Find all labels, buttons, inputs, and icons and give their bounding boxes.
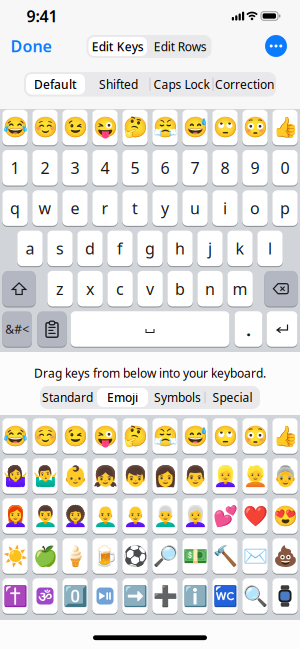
button[interactable]: 🙄 [212,109,238,146]
button[interactable]: 😳 [242,418,268,454]
button[interactable]: m [227,270,253,307]
button[interactable]: 💵 [182,538,208,574]
button[interactable]: Done [10,35,51,57]
button[interactable]: 👱 [242,458,268,494]
button[interactable]: ⚽ [122,538,148,574]
button[interactable]: 💕 [212,498,238,534]
button[interactable]: ☀️ [2,538,28,574]
button[interactable]: o [242,190,268,226]
button[interactable]: 3 [62,150,88,186]
button[interactable]: 👨‍🦲 [92,498,118,534]
button[interactable]: 🚾 [212,578,238,614]
button[interactable]: 👨 [182,458,208,494]
button[interactable]: 🤔 [122,109,148,146]
button[interactable]: 🔎 [152,538,178,574]
button[interactable]: y [152,190,178,226]
button[interactable]: 😉 [62,418,88,454]
button[interactable]: 👩‍🦳 [182,498,208,534]
button[interactable]: 😍 [272,498,298,534]
button[interactable]: 👦 [122,458,148,494]
button[interactable]: 👍 [272,109,298,146]
button[interactable]: 👨‍🦱 [32,498,58,534]
button[interactable]: a [17,230,43,267]
button[interactable]: h [167,230,193,267]
button[interactable]: 🔨 [212,538,238,574]
button[interactable]: 😤 [152,109,178,146]
button[interactable]: 👩 [152,458,178,494]
button[interactable]: 👧 [92,458,118,494]
button[interactable]: 2 [32,150,58,186]
button[interactable]: 😜 [92,418,118,454]
button[interactable]: 🍺 [92,538,118,574]
button[interactable]: ✝️ [2,578,28,614]
button[interactable]: g [137,230,163,267]
button[interactable]: 👨‍🦳 [152,498,178,534]
button[interactable]: t [122,190,148,226]
button[interactable]: 1 [2,150,28,186]
button[interactable]: 👩‍🦰 [2,498,28,534]
button[interactable]: Watch [272,578,298,614]
button[interactable]: 😂 [2,418,28,454]
button[interactable]: 🙄 [212,418,238,454]
button[interactable]: Standard [40,386,95,409]
button[interactable]: ℹ️ [182,578,208,614]
button[interactable]: u [182,190,208,226]
button[interactable]: 💩 [272,538,298,574]
button[interactable]: ☺️ [32,109,58,146]
button[interactable]: Space [70,311,229,347]
button[interactable]: 0 [272,150,298,186]
button[interactable]: ❤️ [242,498,268,534]
button[interactable]: Return [266,311,297,347]
button[interactable]: Emoji [95,386,150,409]
button[interactable]: 4 [92,150,118,186]
button[interactable]: r [92,190,118,226]
button[interactable]: 5 [122,150,148,186]
button[interactable]: Play/Pause [92,578,118,614]
button[interactable]: q [2,190,28,226]
button[interactable]: 😂 [2,109,28,146]
button[interactable]: 😤 [152,418,178,454]
button[interactable]: 🤷‍♂️ [32,458,58,494]
button[interactable]: Edit Keys [86,35,149,58]
button[interactable]: 😳 [242,109,268,146]
button[interactable]: 🤔 [122,418,148,454]
button[interactable]: Edit Rows [149,35,211,58]
button[interactable]: 👩‍🦱 [62,498,88,534]
button[interactable]: i [212,190,238,226]
button[interactable]: Paste [37,311,66,347]
button[interactable]: 🔍 [242,578,268,614]
button[interactable]: w [32,190,58,226]
button[interactable]: Shift [2,270,35,307]
button[interactable]: 7 [182,150,208,186]
button[interactable]: 8 [212,150,238,186]
button[interactable]: x [77,270,103,307]
button[interactable]: 9 [242,150,268,186]
button[interactable]: Symbols [150,386,205,409]
button[interactable]: d [77,230,103,267]
button[interactable]: Shifted [87,72,150,96]
button[interactable]: Default [24,72,87,96]
button[interactable]: ☺️ [32,418,58,454]
button[interactable]: 🍏 [32,538,58,574]
button[interactable]: f [107,230,133,267]
button[interactable]: j [197,230,223,267]
button[interactable]: l [257,230,283,267]
button[interactable]: Delete [264,270,297,307]
button[interactable]: ✉️ [242,538,268,574]
button[interactable]: More [265,35,287,57]
button[interactable]: 😅 [182,418,208,454]
button[interactable]: 👶 [62,458,88,494]
button[interactable]: ➡️ [122,578,148,614]
button[interactable]: 0️⃣ [62,578,88,614]
button[interactable]: k [227,230,253,267]
button[interactable]: p [272,190,298,226]
button[interactable]: 👩‍🦲 [122,498,148,534]
button[interactable]: 🍦 [62,538,88,574]
button[interactable]: e [62,190,88,226]
button[interactable]: 👵 [272,458,298,494]
button[interactable]: n [197,270,223,307]
button[interactable]: 6 [152,150,178,186]
button[interactable]: v [137,270,163,307]
button[interactable]: Symbols [2,311,32,347]
button[interactable]: s [47,230,73,267]
